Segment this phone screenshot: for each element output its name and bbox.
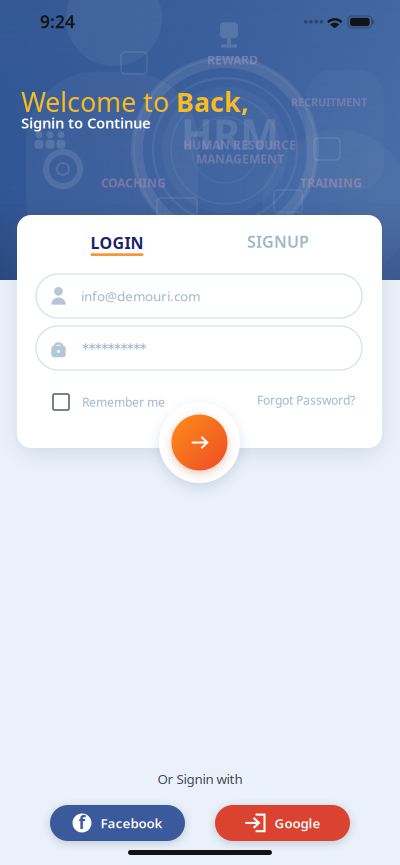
staticText: Signin to Continue (21, 113, 151, 132)
staticText: RECRUITMENT (291, 95, 367, 109)
staticText: Remember me (82, 394, 165, 410)
button[interactable]: LOGIN (69, 227, 165, 261)
button[interactable]: f (50, 805, 185, 841)
button[interactable]: Google (215, 805, 350, 841)
staticText: Back, (176, 84, 249, 119)
staticText: Google (275, 814, 321, 832)
staticText: Forgot Password? (257, 392, 355, 408)
button[interactable]: Sign in (159, 402, 240, 483)
staticText: f (78, 811, 85, 834)
staticText: SIGNUP (247, 231, 309, 252)
staticText: MANAGEMENT (196, 151, 284, 167)
staticText: REWARD (207, 52, 258, 68)
staticText: HUMAN RESOURCE (183, 137, 296, 153)
staticText: HRM (181, 106, 279, 161)
staticText: Or Signin with (157, 770, 242, 788)
staticText: TRAINING (300, 175, 362, 191)
staticText: ∗∗∗∗∗∗∗∗∗∗ (81, 340, 148, 352)
button[interactable]: SIGNUP (230, 231, 326, 265)
staticText: Welcome to (21, 84, 176, 119)
staticText: COACHING (101, 175, 166, 191)
staticText: 9:24 (40, 10, 75, 33)
staticText: Facebook (100, 814, 162, 832)
staticText: LOGIN (90, 232, 143, 253)
button[interactable]: Remember me (53, 391, 165, 413)
button[interactable]: Forgot Password? (257, 389, 355, 411)
staticText: info@demouri.com (81, 287, 200, 305)
